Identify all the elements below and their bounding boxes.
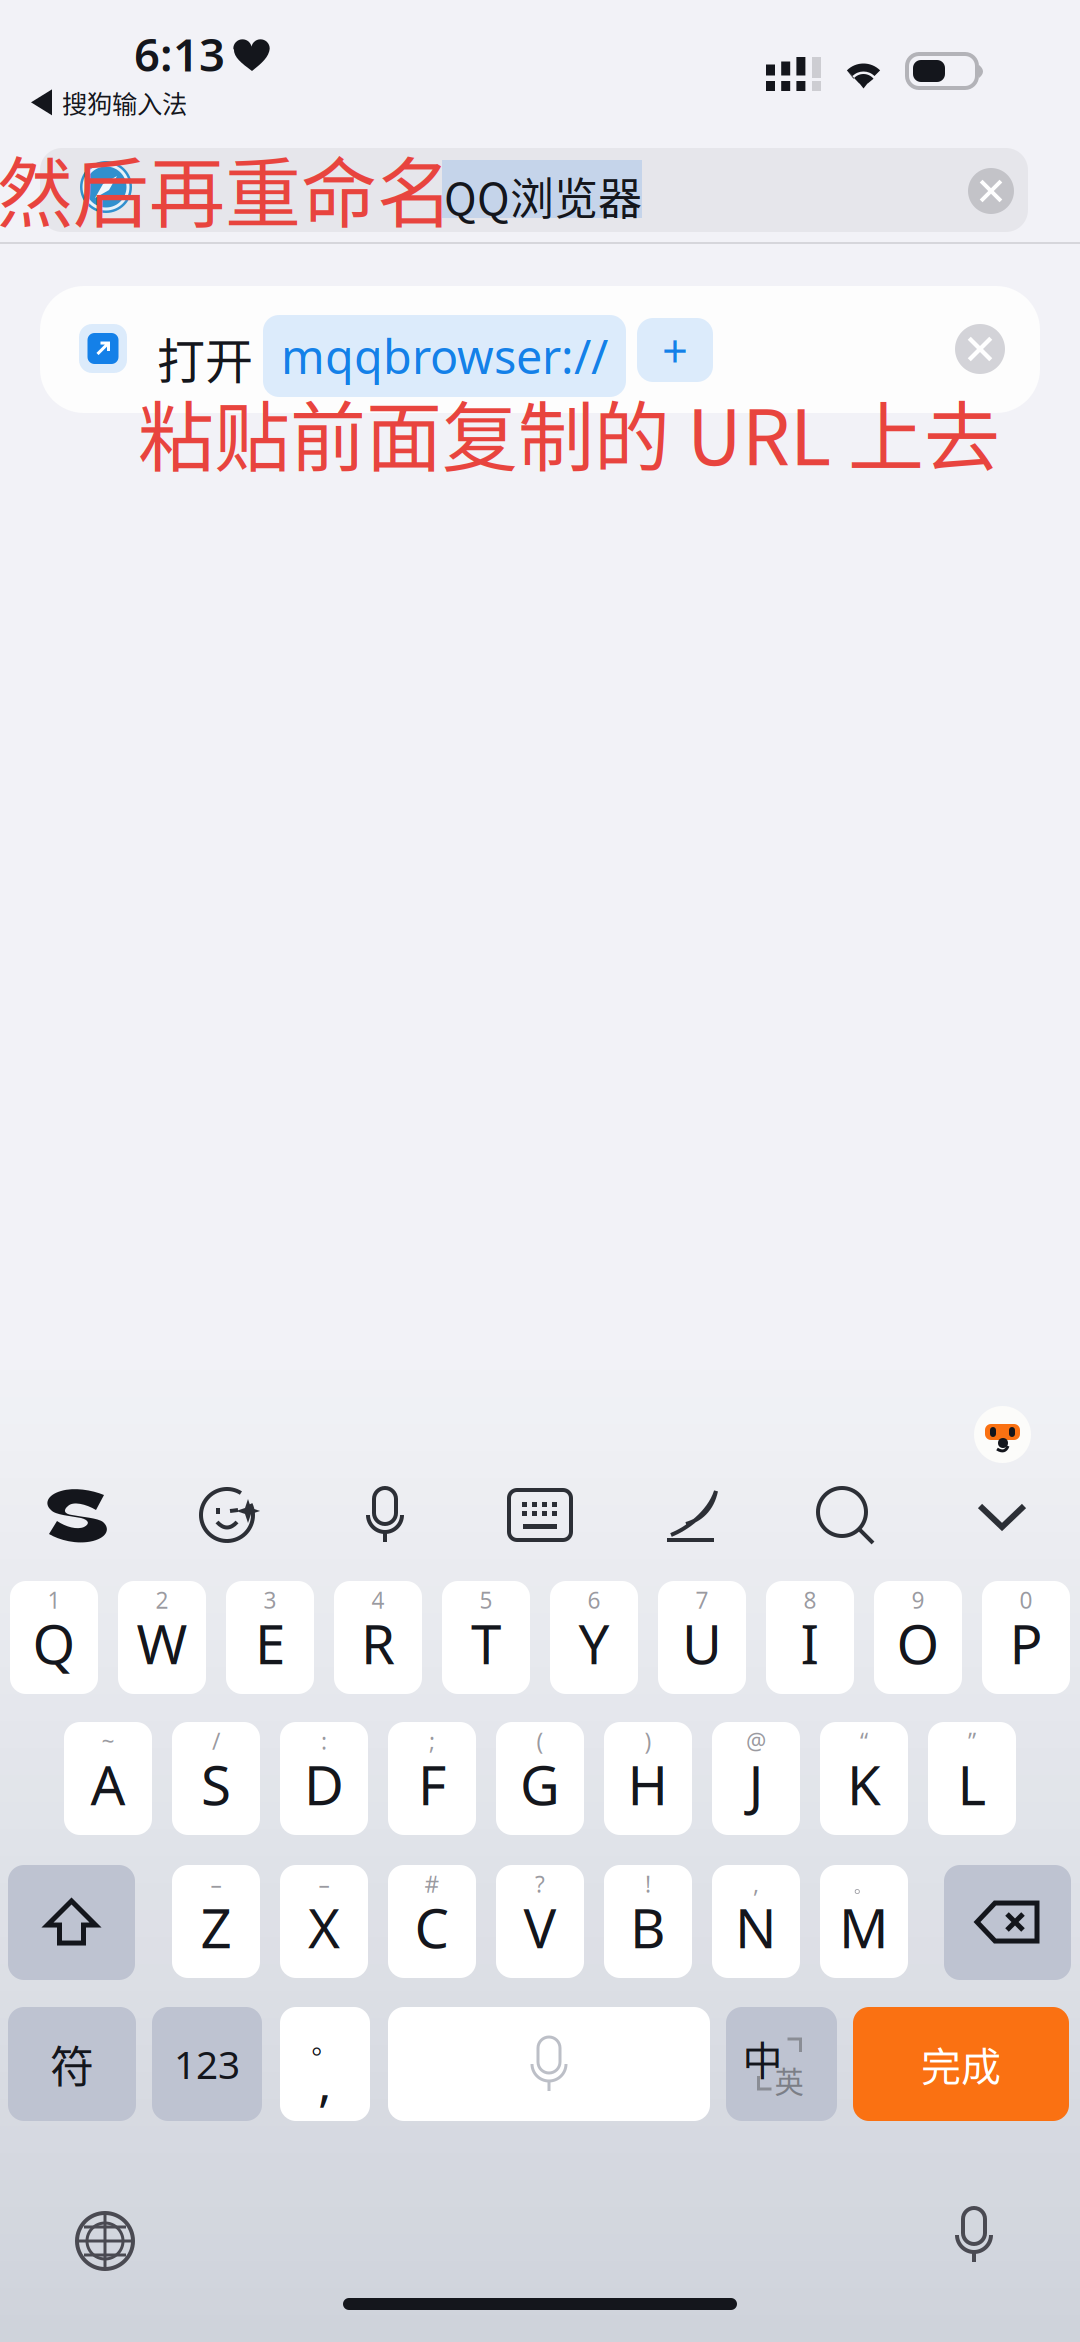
button[interactable]: Add parameter: [637, 318, 713, 382]
staticText: 完成: [921, 2035, 1001, 2093]
button[interactable]: 搜狗输入法: [31, 84, 187, 121]
staticText: ”: [968, 1726, 976, 1756]
button[interactable]: Search: [818, 1486, 876, 1544]
staticText: V: [523, 1891, 556, 1963]
staticText: 8: [803, 1585, 816, 1615]
staticText: mqqbrowser://: [281, 325, 608, 387]
button[interactable]: ): [604, 1722, 692, 1835]
button[interactable]: Chinese English toggle: [726, 2007, 837, 2121]
button[interactable]: /: [172, 1722, 260, 1835]
button[interactable]: 完成: [853, 2007, 1069, 2121]
button[interactable]: Voice input: [357, 1486, 413, 1544]
staticText: F: [418, 1748, 446, 1820]
staticText: /: [212, 1726, 220, 1756]
staticText: ): [644, 1726, 651, 1756]
button[interactable]: Handwriting: [666, 1486, 722, 1544]
button[interactable]: –: [280, 1865, 368, 1978]
button[interactable]: 1: [10, 1581, 98, 1694]
button[interactable]: #: [388, 1865, 476, 1978]
button[interactable]: ?: [496, 1865, 584, 1978]
button[interactable]: :: [280, 1722, 368, 1835]
button[interactable]: !: [604, 1865, 692, 1978]
staticText: D: [304, 1748, 344, 1820]
staticText: –: [210, 1869, 221, 1899]
staticText: N: [735, 1891, 777, 1963]
staticText: B: [630, 1891, 666, 1963]
button[interactable]: 4: [334, 1581, 422, 1694]
button[interactable]: 2: [118, 1581, 206, 1694]
staticText: 6: [587, 1585, 600, 1615]
staticText: ;: [429, 1726, 435, 1756]
staticText: J: [748, 1748, 763, 1820]
button[interactable]: 5: [442, 1581, 530, 1694]
staticText: Z: [200, 1891, 231, 1963]
button[interactable]: ~: [64, 1722, 152, 1835]
button[interactable]: Comma: [280, 2007, 370, 2121]
button[interactable]: Clear search text: [968, 168, 1014, 214]
staticText: ?: [535, 1869, 545, 1899]
button[interactable]: Emoji: [199, 1486, 261, 1544]
staticText: P: [1009, 1607, 1042, 1679]
staticText: “: [860, 1726, 868, 1756]
staticText: S: [201, 1748, 231, 1820]
staticText: R: [361, 1607, 395, 1679]
staticText: 中: [742, 2029, 782, 2087]
button[interactable]: 符: [8, 2007, 136, 2121]
button[interactable]: 123: [152, 2007, 262, 2121]
staticText: 6:13: [134, 24, 225, 84]
staticText: #: [424, 1869, 439, 1899]
staticText: H: [627, 1748, 668, 1820]
staticText: A: [90, 1748, 125, 1820]
staticText: G: [520, 1748, 560, 1820]
staticText: T: [471, 1607, 501, 1679]
button[interactable]: 9: [874, 1581, 962, 1694]
staticText: ,: [753, 1869, 759, 1899]
staticText: E: [255, 1607, 285, 1679]
button[interactable]: Remove action: [955, 324, 1005, 374]
staticText: ,: [318, 2047, 332, 2115]
button[interactable]: 6: [550, 1581, 638, 1694]
button[interactable]: Keyboard layout: [509, 1486, 571, 1544]
staticText: 粘贴前面复制的 URL 上去: [138, 377, 1000, 487]
button[interactable]: ,: [712, 1865, 800, 1978]
staticText: Y: [578, 1607, 609, 1679]
staticText: 。: [852, 1870, 875, 1898]
button[interactable]: 7: [658, 1581, 746, 1694]
staticText: 打开: [157, 323, 253, 392]
staticText: X: [308, 1891, 340, 1963]
button[interactable]: 8: [766, 1581, 854, 1694]
button[interactable]: (: [496, 1722, 584, 1835]
staticText: +: [662, 320, 688, 380]
staticText: W: [136, 1607, 187, 1679]
button[interactable]: Shift: [8, 1865, 135, 1980]
button[interactable]: 0: [982, 1581, 1070, 1694]
staticText: 7: [695, 1585, 708, 1615]
button[interactable]: –: [172, 1865, 260, 1978]
button[interactable]: Sogou: [46, 1486, 108, 1544]
staticText: L: [957, 1748, 986, 1820]
button[interactable]: 3: [226, 1581, 314, 1694]
button[interactable]: Space: [388, 2007, 710, 2121]
button[interactable]: ;: [388, 1722, 476, 1835]
button[interactable]: “: [820, 1722, 908, 1835]
staticText: U: [682, 1607, 722, 1679]
button[interactable]: Delete: [944, 1865, 1071, 1980]
staticText: O: [896, 1607, 939, 1679]
staticText: 。: [311, 2023, 338, 2061]
staticText: I: [800, 1607, 819, 1679]
button[interactable]: ”: [928, 1722, 1016, 1835]
staticText: 然后再重命名: [0, 133, 453, 243]
staticText: 1: [47, 1585, 60, 1615]
staticText: @: [746, 1726, 766, 1756]
staticText: !: [645, 1869, 651, 1899]
staticText: Q: [32, 1607, 75, 1679]
staticText: 5: [479, 1585, 492, 1615]
button[interactable]: @: [712, 1722, 800, 1835]
button[interactable]: Switch keyboard: [76, 2212, 134, 2270]
staticText: QQ浏览器: [444, 164, 642, 228]
staticText: 搜狗输入法: [62, 84, 187, 121]
button[interactable]: Dictation: [946, 2206, 1002, 2264]
button[interactable]: 。: [820, 1865, 908, 1978]
staticText: K: [847, 1748, 881, 1820]
button[interactable]: Hide keyboard: [978, 1486, 1026, 1544]
